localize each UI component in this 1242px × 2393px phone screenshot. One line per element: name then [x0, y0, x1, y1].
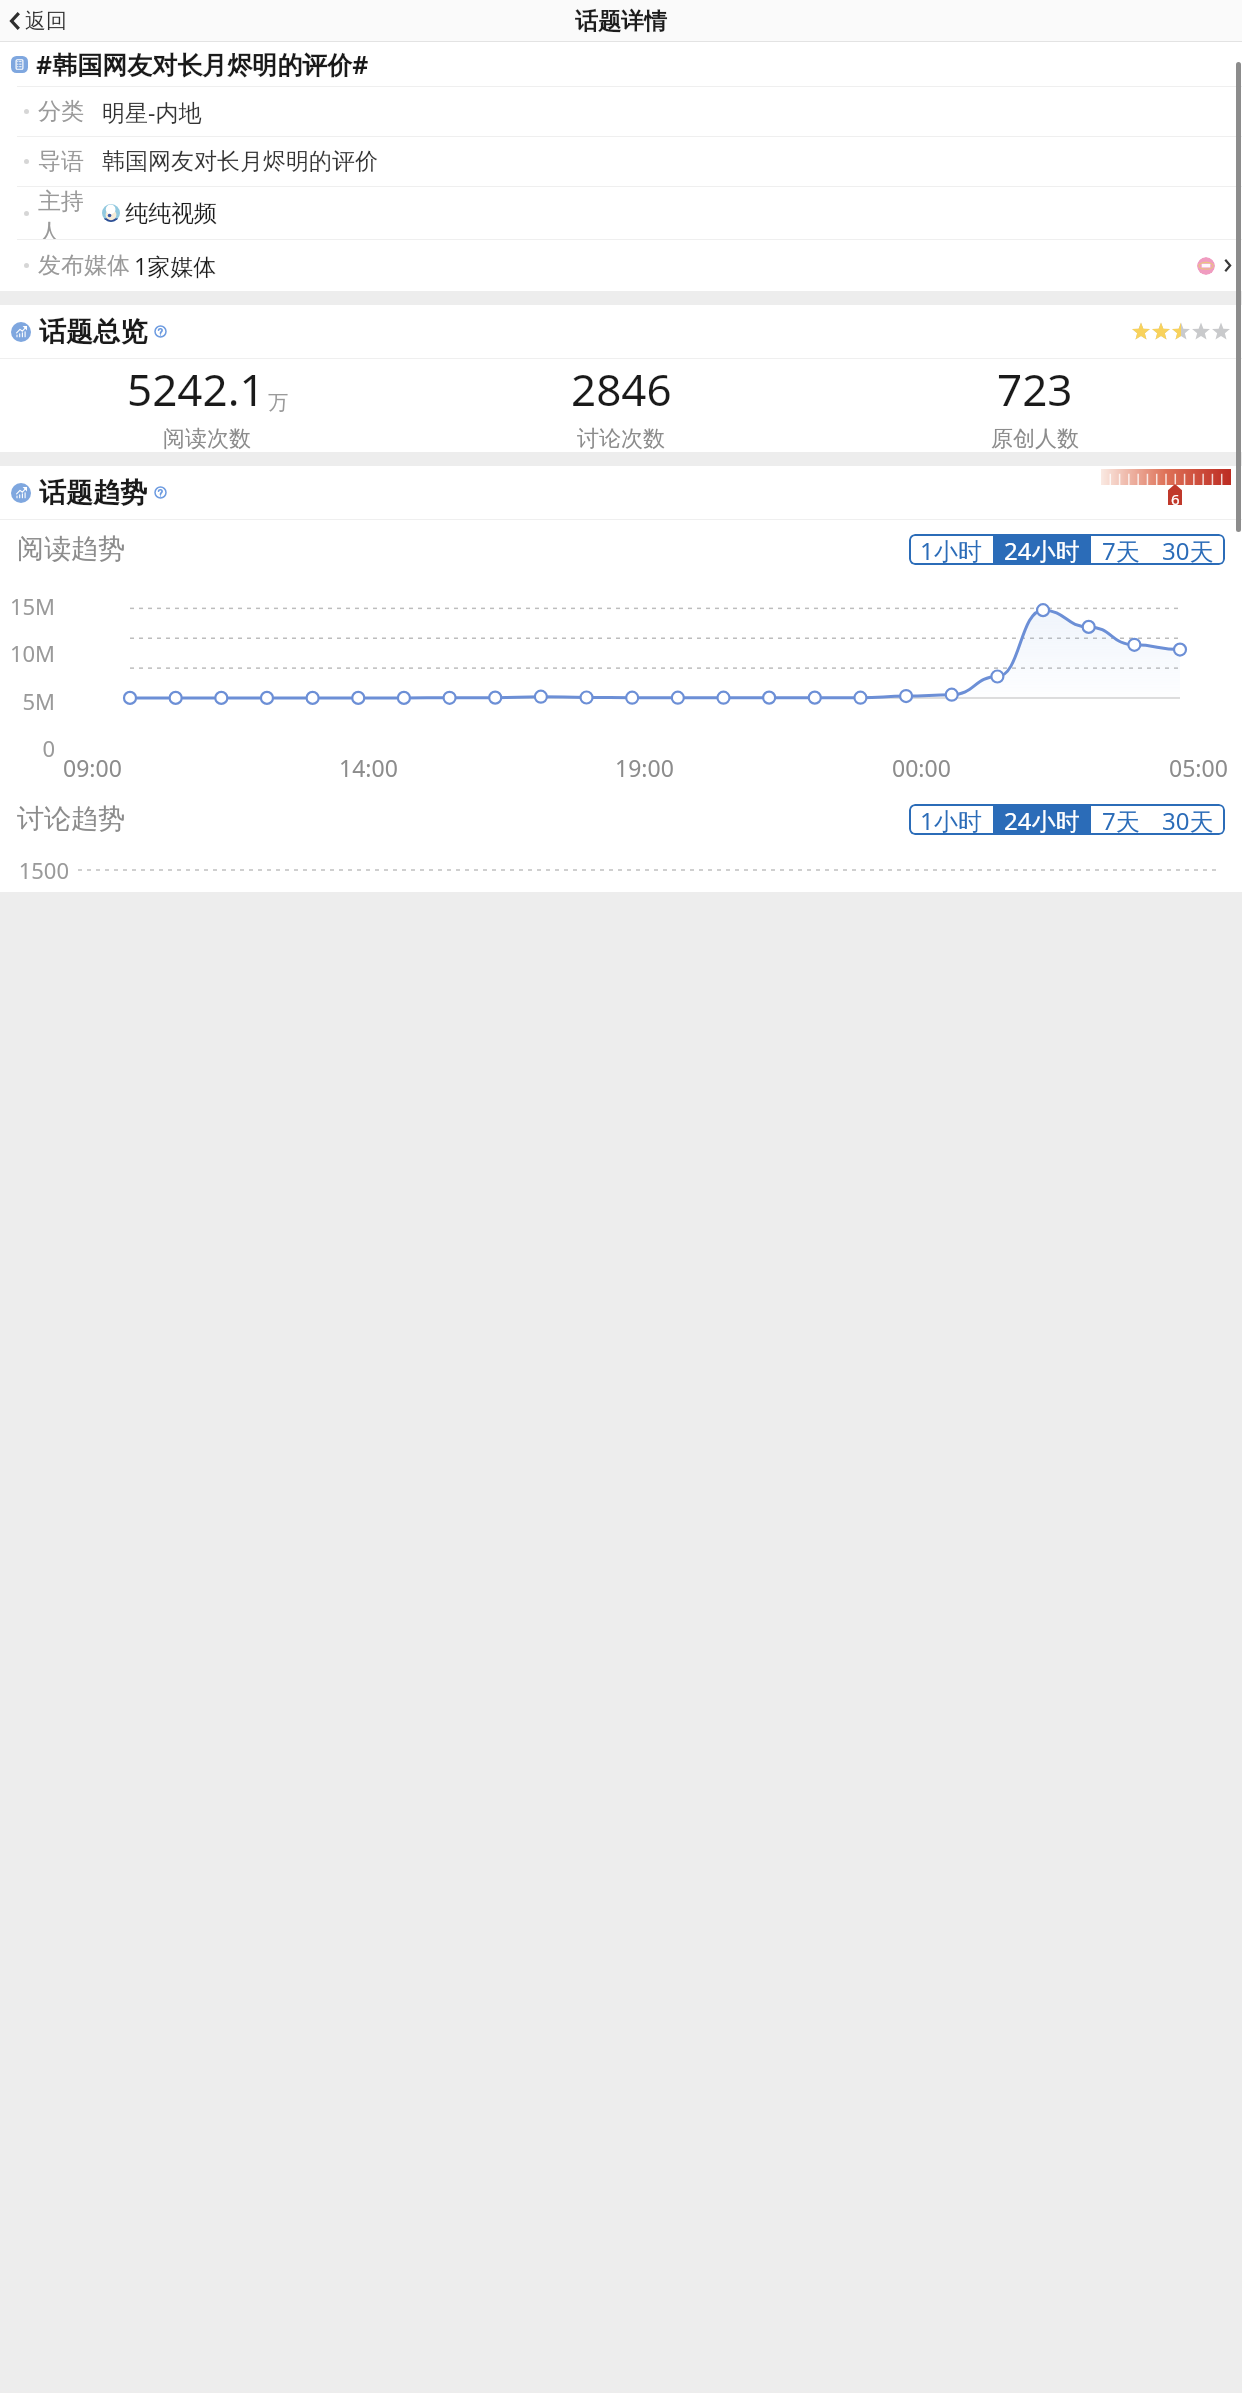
staticText: #韩国网友对长月烬明的评价# [36, 47, 369, 81]
staticText: 00:00 [892, 752, 951, 783]
staticText: 30天 [1162, 804, 1214, 835]
staticText: 讨论次数 [577, 425, 665, 452]
button[interactable]: 24小时 [993, 804, 1091, 835]
staticText: 话题趋势 [39, 476, 147, 510]
staticText: 2846 [571, 359, 672, 419]
button[interactable]: #韩国网友对长月烬明的评价# [0, 42, 1242, 86]
staticText: 0 [0, 733, 55, 763]
staticText: 1小时 [920, 534, 982, 565]
button[interactable]: 7天 [1091, 804, 1151, 835]
staticText: 1小时 [920, 804, 982, 835]
staticText: 723 [997, 359, 1073, 419]
button[interactable]: 723 [828, 359, 1242, 452]
other: 说明 [154, 486, 167, 499]
staticText: 5M [0, 686, 55, 716]
staticText: 14:00 [339, 752, 398, 783]
staticText: 19:00 [615, 752, 674, 783]
button[interactable]: 发布媒体 [0, 240, 1242, 291]
button[interactable]: 24小时 [993, 534, 1091, 565]
button[interactable]: 2846 [414, 359, 828, 452]
staticText: 分类 [38, 97, 84, 126]
button[interactable]: 30天 [1151, 804, 1225, 835]
staticText: 15M [0, 591, 55, 621]
staticText: 09:00 [63, 752, 122, 783]
staticText: 阅读次数 [163, 425, 251, 452]
button[interactable]: 导语 [0, 137, 1242, 186]
button[interactable]: 1小时 [909, 534, 993, 565]
staticText: 明星-内地 [102, 96, 202, 127]
staticText: 1家媒体 [134, 250, 217, 281]
button[interactable]: 7天 [1091, 534, 1151, 565]
staticText: 24小时 [1004, 534, 1080, 565]
staticText: 主持人 [38, 187, 102, 239]
staticText: 讨论趋势 [17, 802, 125, 836]
staticText: 返回 [25, 8, 67, 34]
button[interactable]: 30天 [1151, 534, 1225, 565]
staticText: 万 [268, 390, 288, 415]
staticText: 05:00 [1169, 752, 1228, 783]
staticText: 纯纯视频 [125, 199, 217, 228]
staticText: 话题总览 [39, 315, 147, 349]
staticText: 7天 [1102, 804, 1140, 835]
staticText: 原创人数 [991, 425, 1079, 452]
staticText: 话题详情 [575, 7, 667, 36]
staticText: 7天 [1102, 534, 1140, 565]
button[interactable]: 主持人 [0, 187, 1242, 239]
button[interactable]: 1小时 [909, 804, 993, 835]
staticText: 导语 [38, 147, 84, 176]
staticText: 1500 [17, 855, 69, 885]
staticText: 5242.1 [127, 359, 265, 419]
button[interactable]: 分类 [0, 87, 1242, 136]
staticText: 10M [0, 638, 55, 668]
button[interactable]: 5242.1 [0, 359, 414, 452]
staticText: 24小时 [1004, 804, 1080, 835]
staticText: 韩国网友对长月烬明的评价 [102, 147, 378, 176]
staticText: 阅读趋势 [17, 532, 125, 566]
staticText: 发布媒体 [38, 251, 130, 280]
staticText: 30天 [1162, 534, 1214, 565]
staticText: 6 [1171, 489, 1180, 509]
other: 说明 [154, 325, 167, 338]
button[interactable]: 返回 [4, 4, 73, 38]
